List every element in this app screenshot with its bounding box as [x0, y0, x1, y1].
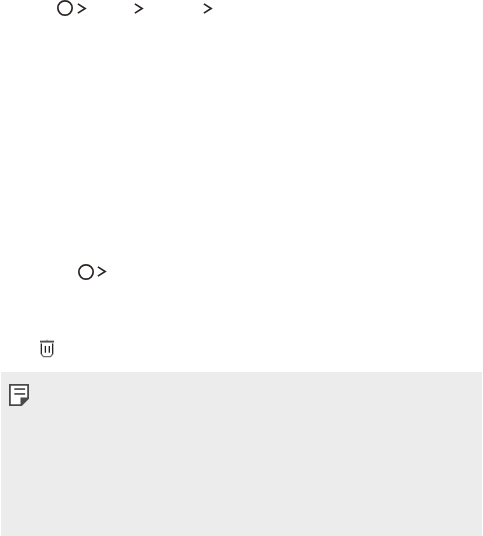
button[interactable]: Delete — [40, 339, 54, 357]
button[interactable]: Next — [134, 3, 143, 14]
button[interactable]: Next — [203, 3, 212, 14]
button[interactable]: Account — [78, 264, 106, 280]
button[interactable]: Home — [57, 0, 86, 16]
button[interactable]: Note — [9, 384, 29, 406]
